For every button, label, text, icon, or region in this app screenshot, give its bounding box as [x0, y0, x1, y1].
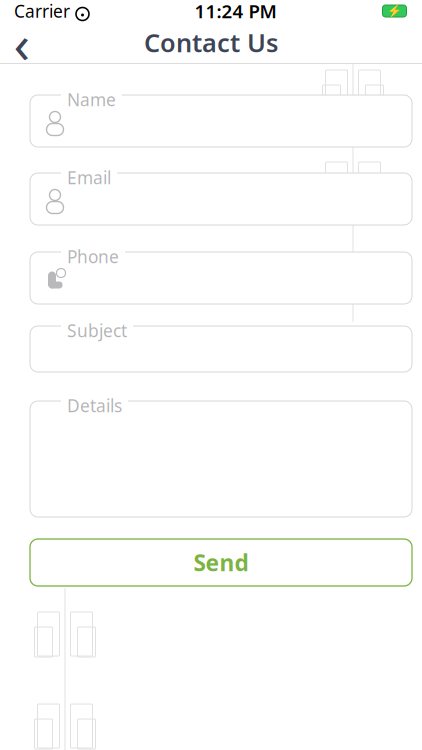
- staticText: 11:24 PM: [194, 0, 276, 23]
- staticText: Phone: [67, 245, 119, 268]
- staticText: Name: [67, 88, 116, 111]
- staticText: Details: [67, 394, 122, 417]
- staticText: Subject: [67, 319, 127, 342]
- staticText: Carrier: [14, 0, 70, 22]
- staticText: Send: [193, 547, 248, 577]
- staticText: Email: [67, 166, 111, 189]
- staticText: Contact Us: [144, 26, 278, 59]
- button[interactable]: Send: [30, 539, 412, 586]
- staticText: ⚡: [387, 4, 402, 18]
- button[interactable]: Back: [0, 22, 44, 63]
- staticText: ‹: [13, 7, 30, 78]
